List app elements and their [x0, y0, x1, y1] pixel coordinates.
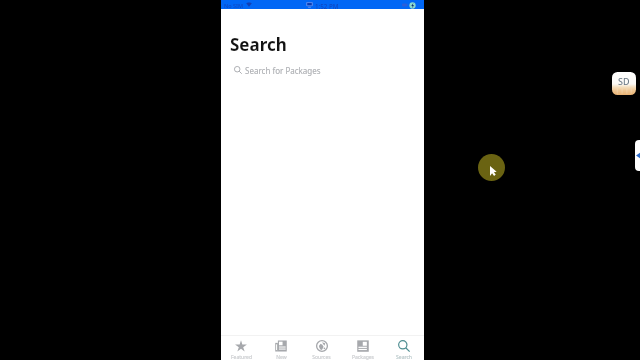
staticText: Featured — [231, 354, 252, 360]
staticText: Packages — [352, 354, 374, 360]
staticText: Search for Packages — [245, 65, 321, 76]
staticText: 1:52 PM — [315, 2, 339, 10]
staticText: SD — [618, 75, 630, 87]
staticText: Sources — [312, 354, 331, 360]
button[interactable]: Search for Packages — [221, 58, 424, 82]
staticText: Search — [396, 354, 412, 360]
button[interactable]: SD card — [612, 72, 636, 95]
staticText: No SIM — [224, 2, 244, 9]
button[interactable]: New — [261, 336, 301, 360]
staticText: New — [276, 354, 287, 360]
button[interactable]: Search — [383, 336, 424, 360]
staticText: Search — [230, 33, 287, 56]
button[interactable]: Back — [635, 140, 640, 171]
button[interactable]: Sources — [301, 336, 342, 360]
button[interactable]: Featured — [221, 336, 261, 360]
button[interactable]: Packages — [342, 336, 383, 360]
